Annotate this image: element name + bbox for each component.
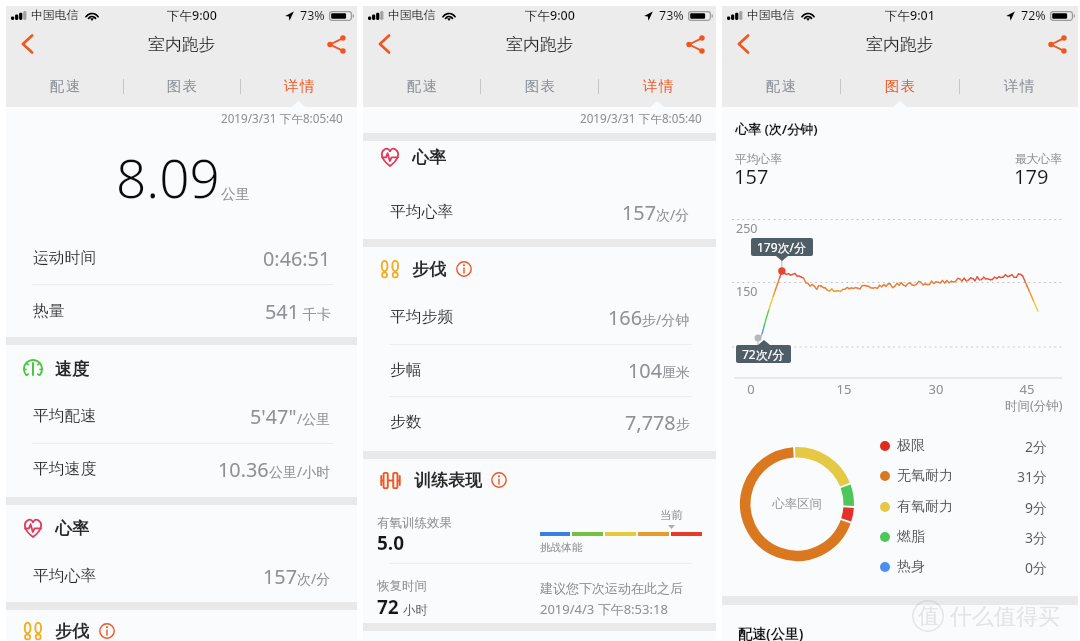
button[interactable]: Back <box>363 25 405 63</box>
button[interactable]: 图表 <box>481 64 598 108</box>
staticText: 公里/小时 <box>269 462 331 481</box>
staticText: 心率 (次/分钟) <box>735 120 818 138</box>
staticText: 平均心率 <box>390 202 454 222</box>
staticText: 0:46:51 <box>263 245 331 272</box>
staticText: 2分 <box>1025 437 1048 456</box>
staticText: 运动时间 <box>33 248 97 268</box>
button[interactable]: 步伐 <box>23 621 115 641</box>
staticText: 挑战体能 <box>540 541 583 554</box>
staticText: 中国电信 <box>388 8 436 23</box>
button[interactable]: 配速 <box>6 64 123 108</box>
staticText: 157 <box>622 199 656 226</box>
staticText: 步 <box>676 416 690 434</box>
staticText: 104 <box>628 357 662 384</box>
button[interactable]: 平均心率 <box>33 562 331 590</box>
button[interactable]: 运动时间 <box>33 244 331 272</box>
staticText: 平均心率 <box>33 566 97 586</box>
button[interactable]: 训练表现 <box>380 470 507 490</box>
button[interactable]: 详情 <box>599 64 716 108</box>
button[interactable]: 心率 <box>23 518 89 538</box>
staticText: 250 <box>736 220 758 237</box>
button[interactable]: Share <box>1036 25 1078 63</box>
button[interactable]: 图表 <box>841 64 959 108</box>
staticText: 中国电信 <box>747 8 795 23</box>
button[interactable]: Share <box>674 25 716 63</box>
staticText: 30 <box>912 380 960 398</box>
button[interactable]: Back <box>6 25 48 63</box>
staticText: 详情 <box>1003 77 1035 95</box>
staticText: 心率 <box>55 518 89 538</box>
button[interactable]: 心率 <box>380 147 446 167</box>
button[interactable]: 燃脂 <box>880 526 1048 548</box>
button[interactable]: 平均速度 <box>33 455 331 483</box>
button[interactable]: 速度 <box>23 359 89 379</box>
staticText: 179次/分 <box>757 239 807 255</box>
staticText: 次/分 <box>656 205 690 224</box>
button[interactable]: 步数 <box>390 408 690 436</box>
staticText: 速度 <box>55 359 89 379</box>
staticText: 最大心率 <box>1015 152 1063 167</box>
staticText: 2019/3/31 下午8:05:40 <box>221 110 343 126</box>
button[interactable]: 步伐 <box>380 259 472 279</box>
staticText: 有氧耐力 <box>897 498 953 516</box>
staticText: 下午9:00 <box>525 7 575 24</box>
staticText: 5.0 <box>377 530 405 556</box>
staticText: 157 <box>734 163 769 190</box>
staticText: 73% <box>300 7 325 24</box>
staticText: 2019/4/3 下午8:53:18 <box>540 600 668 618</box>
button[interactable]: Back <box>722 25 764 63</box>
button[interactable]: 配速 <box>363 64 480 108</box>
staticText: 次/分 <box>297 569 331 588</box>
button[interactable]: 平均心率 <box>390 198 690 226</box>
button[interactable]: 图表 <box>124 64 240 108</box>
staticText: 中国电信 <box>31 8 79 23</box>
staticText: 有氧训练效果 <box>377 515 452 531</box>
staticText: /公里 <box>297 409 331 428</box>
staticText: 166 <box>608 304 642 331</box>
button[interactable]: 有氧耐力 <box>880 496 1048 518</box>
staticText: 时间(分钟) <box>1005 397 1063 414</box>
button[interactable]: 详情 <box>960 64 1078 108</box>
button[interactable]: 热量 <box>33 297 331 325</box>
staticText: 平均配速 <box>33 406 97 426</box>
staticText: 平均步频 <box>390 307 454 327</box>
staticText: 10.36 <box>218 456 269 483</box>
button[interactable]: 极限 <box>880 435 1048 457</box>
button[interactable]: 平均配速 <box>33 402 331 430</box>
staticText: 179 <box>1014 163 1049 190</box>
button[interactable]: Share <box>315 25 357 63</box>
staticText: 小时 <box>403 602 428 618</box>
staticText: 室内跑步 <box>506 34 574 55</box>
staticText: 图表 <box>524 77 556 95</box>
staticText: 燃脂 <box>897 528 925 546</box>
staticText: 热量 <box>33 301 65 321</box>
staticText: 公里 <box>221 185 250 203</box>
staticText: 31分 <box>1017 467 1048 486</box>
staticText: 配速 <box>406 77 438 95</box>
staticText: 详情 <box>642 77 674 95</box>
button[interactable]: 平均步频 <box>390 303 690 331</box>
staticText: 极限 <box>897 437 925 455</box>
staticText: 0 <box>727 380 775 398</box>
staticText: 3分 <box>1025 528 1048 547</box>
staticText: 72 <box>377 594 399 620</box>
staticText: 2019/3/31 下午8:05:40 <box>580 110 702 126</box>
button[interactable]: 无氧耐力 <box>880 465 1048 487</box>
button[interactable]: 热身 <box>880 556 1048 578</box>
staticText: 厘米 <box>662 364 690 382</box>
button[interactable]: 步幅 <box>390 356 690 384</box>
button[interactable]: 详情 <box>241 64 357 108</box>
staticText: 心率区间 <box>772 496 822 512</box>
staticText: 5'47" <box>250 403 297 430</box>
button[interactable]: 配速 <box>722 64 840 108</box>
staticText: 什么值得买 <box>950 603 1060 631</box>
staticText: 157 <box>263 563 297 590</box>
staticText: 室内跑步 <box>866 34 934 55</box>
staticText: 72次/分 <box>742 346 785 362</box>
staticText: 热身 <box>897 558 925 576</box>
staticText: 详情 <box>283 77 315 95</box>
staticText: 步伐 <box>55 621 89 641</box>
staticText: 配速 <box>765 77 797 95</box>
staticText: 恢复时间 <box>377 578 427 594</box>
staticText: 千卡 <box>299 304 331 323</box>
